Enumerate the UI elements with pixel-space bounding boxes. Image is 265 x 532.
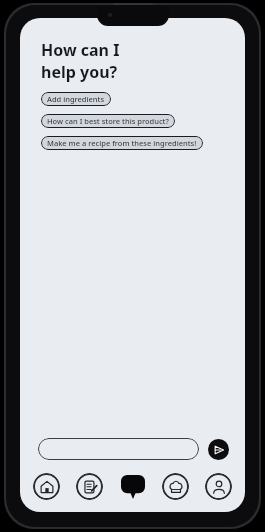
button[interactable]: Home <box>33 473 60 500</box>
button[interactable]: Make me a recipe from these ingredients! <box>41 136 203 150</box>
button[interactable]: Notes <box>76 473 103 500</box>
button[interactable]: How can I best store this product? <box>41 114 175 128</box>
button[interactable]: Chat <box>119 473 146 500</box>
button[interactable]: Profile <box>205 473 232 500</box>
staticText: How can I best store this product? <box>47 116 169 126</box>
staticText: How can I <box>41 39 120 61</box>
staticText: Add ingredients <box>47 94 105 104</box>
button[interactable]: Add ingredients <box>41 92 111 106</box>
button[interactable]: Recipes <box>162 473 189 500</box>
staticText: help you? <box>41 61 118 83</box>
button[interactable]: Message input <box>38 438 199 460</box>
button[interactable]: Send <box>208 439 229 460</box>
staticText: Make me a recipe from these ingredients! <box>47 138 197 148</box>
